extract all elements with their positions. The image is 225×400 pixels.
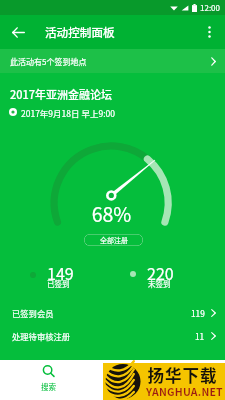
staticText: 搜索 [41,381,56,392]
button[interactable]: Back [6,20,30,44]
staticText: 2017年亚洲金融论坛 [10,86,113,102]
button[interactable]: 已签到会员 [0,301,225,324]
button[interactable]: 搜索 [28,365,68,392]
staticText: 220 [147,261,174,284]
button[interactable]: 此活动有5个签到地点 [0,49,225,73]
staticText: 活动控制面板 [45,24,115,41]
staticText: 2017年9月18日 早上9:00 [21,107,115,119]
staticText: YANGHUA.NET [146,384,223,399]
staticText: 68% [0,199,224,227]
staticText: 此活动有5个签到地点 [10,56,87,68]
button[interactable]: More options [197,20,221,44]
staticText: 149 [47,261,74,284]
staticText: 未签到 [148,278,171,289]
staticText: 全部注册 [100,235,128,245]
staticText: 处理待审核注册 [12,330,71,342]
button[interactable]: 处理待审核注册 [0,324,225,347]
staticText: 12:00 [200,2,220,14]
staticText: 扬华下载 [147,363,217,387]
button[interactable]: 全部注册 [84,234,143,246]
staticText: 119 [191,307,205,319]
staticText: 11 [195,330,205,342]
staticText: 已签到 [47,278,70,289]
staticText: 已签到会员 [12,307,54,319]
